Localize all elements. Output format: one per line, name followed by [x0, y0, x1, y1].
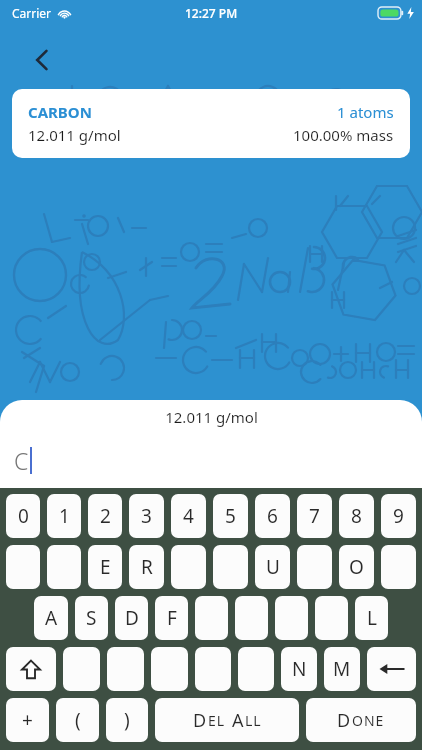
- staticText: 12.011 g/mol: [28, 125, 121, 145]
- button[interactable]: [381, 545, 416, 589]
- staticText: M: [333, 656, 351, 682]
- button[interactable]: (: [56, 698, 99, 742]
- staticText: LL: [245, 711, 262, 730]
- button[interactable]: S: [75, 596, 108, 640]
- button[interactable]: Back: [22, 40, 62, 80]
- button[interactable]: [151, 647, 188, 691]
- button[interactable]: [235, 596, 268, 640]
- staticText: S: [86, 605, 97, 631]
- button[interactable]: Backspace: [367, 647, 416, 691]
- button[interactable]: C: [0, 433, 422, 488]
- button[interactable]: [6, 545, 40, 589]
- staticText: D: [125, 605, 139, 631]
- staticText: L: [367, 605, 377, 631]
- staticText: EL: [208, 711, 226, 730]
- button[interactable]: E: [88, 545, 122, 589]
- staticText: C: [14, 445, 29, 476]
- button[interactable]: +: [6, 698, 49, 742]
- staticText: 0: [18, 503, 29, 529]
- staticText: 1: [59, 503, 70, 529]
- button[interactable]: D: [115, 596, 148, 640]
- button[interactable]: M: [324, 647, 360, 691]
- button[interactable]: O: [339, 545, 374, 589]
- staticText: E: [100, 554, 111, 580]
- staticText: F: [167, 605, 177, 631]
- staticText: 9: [393, 503, 404, 529]
- staticText: 4: [183, 503, 194, 529]
- staticText: U: [266, 554, 280, 580]
- button[interactable]: [171, 545, 206, 589]
- staticText: 1 atoms: [337, 102, 394, 122]
- button[interactable]: [47, 545, 81, 589]
- staticText: A: [45, 605, 58, 631]
- button[interactable]: [315, 596, 348, 640]
- button[interactable]: F: [155, 596, 188, 640]
- staticText: Carrier: [12, 5, 52, 21]
- button[interactable]: [195, 596, 228, 640]
- staticText: N: [292, 656, 307, 682]
- button[interactable]: 6: [255, 494, 290, 538]
- button[interactable]: [107, 647, 144, 691]
- staticText: R: [141, 554, 153, 580]
- staticText: D: [337, 708, 352, 733]
- button[interactable]: N: [281, 647, 317, 691]
- staticText: 8: [351, 503, 362, 529]
- staticText: 12.011 g/mol: [165, 407, 258, 427]
- button[interactable]: D: [155, 698, 299, 742]
- staticText: 3: [141, 503, 152, 529]
- button[interactable]: L: [355, 596, 388, 640]
- staticText: 5: [225, 503, 236, 529]
- staticText: +: [22, 707, 33, 733]
- staticText: O: [349, 554, 364, 580]
- button[interactable]: U: [255, 545, 290, 589]
- staticText: CARBON: [28, 102, 92, 122]
- button[interactable]: 2: [88, 494, 122, 538]
- button[interactable]: 1: [47, 494, 81, 538]
- button[interactable]: 9: [381, 494, 416, 538]
- button[interactable]: 3: [129, 494, 164, 538]
- staticText: (: [75, 707, 81, 733]
- button[interactable]: 0: [6, 494, 40, 538]
- button[interactable]: [238, 647, 274, 691]
- button[interactable]: CARBON: [12, 89, 410, 158]
- staticText: ONE: [352, 711, 385, 730]
- staticText: 6: [267, 503, 278, 529]
- button[interactable]: R: [129, 545, 164, 589]
- staticText: A: [232, 708, 245, 733]
- button[interactable]: 4: [171, 494, 206, 538]
- button[interactable]: [195, 647, 231, 691]
- button[interactable]: [275, 596, 308, 640]
- staticText: 12:27 PM: [185, 5, 238, 21]
- button[interactable]: 7: [297, 494, 332, 538]
- button[interactable]: [213, 545, 248, 589]
- button[interactable]: 8: [339, 494, 374, 538]
- button[interactable]: Shift: [6, 647, 56, 691]
- staticText: 2: [100, 503, 111, 529]
- button[interactable]: ): [106, 698, 148, 742]
- button[interactable]: [63, 647, 100, 691]
- button[interactable]: D: [306, 698, 416, 742]
- button[interactable]: [297, 545, 332, 589]
- staticText: 100.00% mass: [293, 125, 394, 145]
- staticText: D: [193, 708, 208, 733]
- button[interactable]: 5: [213, 494, 248, 538]
- button[interactable]: A: [34, 596, 68, 640]
- staticText: ): [124, 707, 130, 733]
- staticText: 7: [309, 503, 320, 529]
